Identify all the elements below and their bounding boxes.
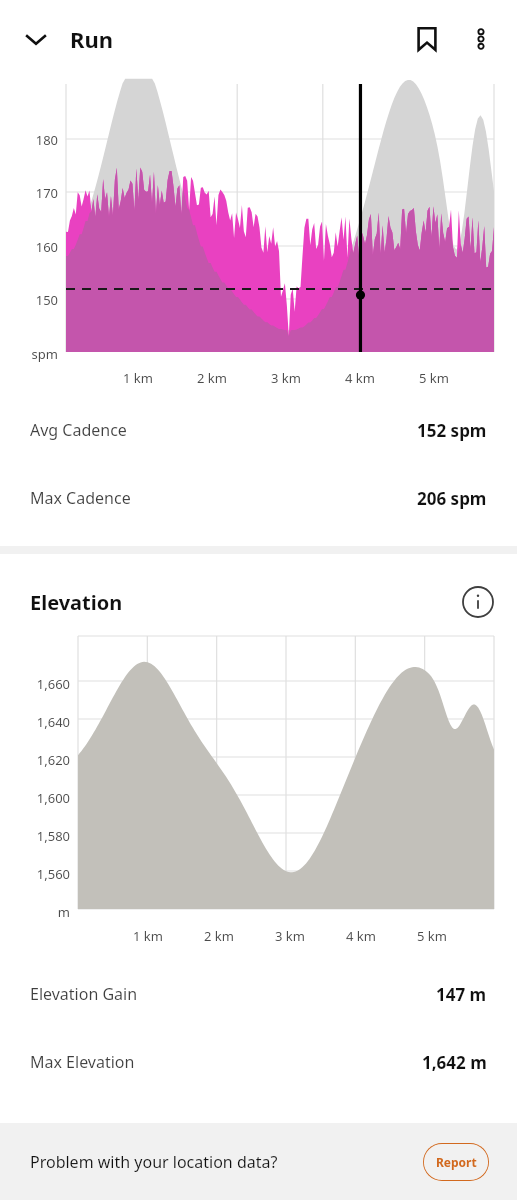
button[interactable]: Avg Cadence — [0, 396, 517, 464]
button[interactable]: Elevation Gain — [0, 960, 517, 1028]
staticText: Run — [70, 24, 114, 54]
staticText: 3 km — [257, 927, 323, 945]
staticText: 2 km — [186, 927, 252, 945]
staticText: Max Cadence — [30, 487, 131, 509]
staticText: 180 — [0, 131, 58, 149]
staticText: Problem with your location data? — [30, 1151, 278, 1173]
staticText: 1,580 — [0, 827, 70, 845]
staticText: 3 km — [253, 369, 319, 387]
staticText: 206 spm — [417, 487, 487, 510]
staticText: 147 m — [436, 983, 487, 1006]
staticText: 150 — [0, 291, 58, 309]
staticText: Elevation Gain — [30, 983, 138, 1005]
staticText: 4 km — [328, 927, 394, 945]
staticText: Max Elevation — [30, 1051, 135, 1073]
staticText: 5 km — [401, 369, 467, 387]
staticText: 1,620 — [0, 751, 70, 769]
staticText: 4 km — [327, 369, 393, 387]
staticText: Avg Cadence — [30, 419, 127, 441]
staticText: Report — [436, 1154, 477, 1170]
staticText: Elevation — [30, 589, 123, 616]
staticText: 170 — [0, 184, 58, 202]
staticText: 5 km — [399, 927, 465, 945]
staticText: 1,660 — [0, 675, 70, 693]
staticText: 1,640 — [0, 713, 70, 731]
staticText: 1 km — [105, 369, 171, 387]
staticText: 1,600 — [0, 789, 70, 807]
staticText: 160 — [0, 238, 58, 256]
button[interactable]: Max Elevation — [0, 1028, 517, 1096]
staticText: m — [0, 903, 70, 921]
staticText: 2 km — [179, 369, 245, 387]
staticText: 152 spm — [417, 419, 487, 442]
button[interactable]: Info — [455, 579, 501, 625]
button[interactable]: More options — [455, 13, 507, 65]
button[interactable]: Collapse — [10, 13, 62, 65]
staticText: spm — [0, 345, 58, 363]
button[interactable]: Max Cadence — [0, 464, 517, 532]
staticText: 1 km — [115, 927, 181, 945]
button[interactable]: Report — [423, 1143, 489, 1181]
staticText: 1,560 — [0, 865, 70, 883]
button[interactable]: Bookmark — [401, 13, 453, 65]
staticText: 1,642 m — [422, 1051, 487, 1074]
